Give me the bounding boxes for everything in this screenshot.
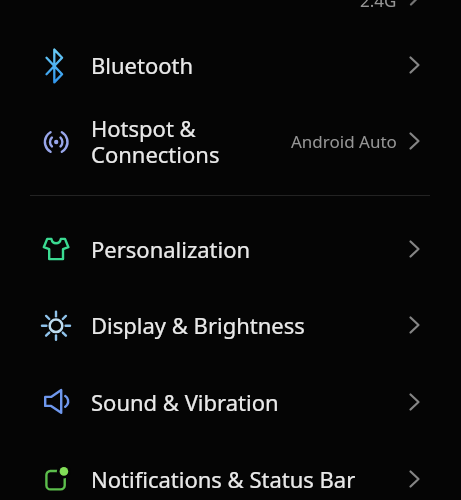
button[interactable]: Personalization — [0, 212, 461, 286]
staticText: Personalization — [91, 234, 251, 264]
staticText: 2.4G — [360, 0, 397, 12]
staticText: Bluetooth — [91, 50, 194, 80]
button[interactable]: Bluetooth — [0, 28, 461, 102]
staticText: Android Auto — [291, 130, 397, 153]
button[interactable]: Hotspot & Connections — [0, 94, 461, 188]
staticText: Hotspot & Connections — [91, 113, 220, 170]
staticText: Sound & Vibration — [91, 387, 279, 417]
button[interactable]: Notifications & Status Bar — [0, 442, 461, 500]
staticText: Notifications & Status Bar — [91, 464, 356, 494]
staticText: Display & Brightness — [91, 310, 305, 340]
button[interactable]: Display & Brightness — [0, 288, 461, 362]
button[interactable]: Sound & Vibration — [0, 365, 461, 439]
